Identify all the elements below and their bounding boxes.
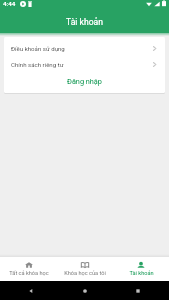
staticText: Khóa học của tôi — [64, 270, 106, 277]
staticText: Tài khoản — [129, 270, 154, 277]
button[interactable]: Back — [28, 288, 34, 294]
button[interactable]: Khóa học của tôi — [57, 257, 113, 281]
button[interactable]: Tài khoản — [113, 257, 169, 281]
button[interactable]: Điều khoản sử dụng — [4, 40, 165, 56]
staticText: 4:44 — [3, 0, 16, 7]
button[interactable]: Home — [82, 288, 88, 294]
button[interactable]: Đăng nhập — [4, 72, 165, 93]
staticText: Đăng nhập — [67, 77, 102, 86]
button[interactable]: Chính sách riêng tư — [4, 56, 165, 72]
staticText: Tất cả khóa học — [9, 270, 49, 277]
staticText: Tài khoản — [66, 17, 103, 27]
button[interactable]: Tất cả khóa học — [0, 257, 57, 281]
button[interactable]: Recents — [135, 288, 141, 294]
staticText: Chính sách riêng tư — [11, 61, 64, 68]
staticText: Điều khoản sử dụng — [11, 45, 65, 52]
